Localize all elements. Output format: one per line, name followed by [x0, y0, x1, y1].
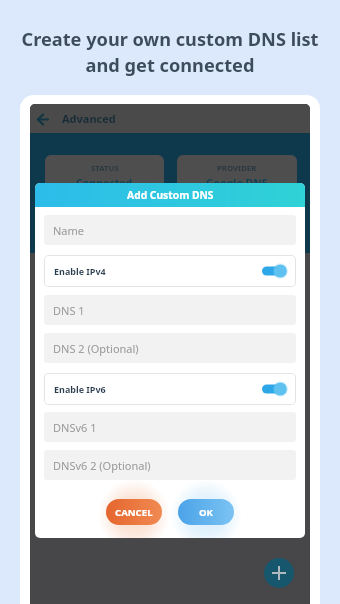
staticText: Enable IPv4 [54, 265, 106, 277]
button[interactable]: DNS 2 (Optional) [44, 333, 296, 363]
button[interactable]: OK [178, 499, 234, 525]
button[interactable]: Name [44, 215, 296, 245]
staticText: PROVIDER [217, 163, 257, 174]
staticText: CANCEL [115, 506, 153, 519]
staticText: DNSv6 2 (Optional) [53, 458, 151, 473]
button[interactable]: Back [34, 111, 50, 127]
staticText: Connected [76, 176, 133, 190]
staticText: STATUS [91, 163, 119, 174]
button[interactable]: Enable IPv6 [44, 373, 296, 405]
staticText: Name [53, 223, 85, 238]
staticText: Add Custom DNS [127, 188, 214, 202]
button[interactable]: Enable IPv4 [44, 255, 296, 287]
button[interactable]: CANCEL [106, 499, 162, 525]
staticText: OK [199, 506, 213, 519]
staticText: Enable IPv6 [54, 383, 106, 395]
button[interactable]: DNSv6 1 [44, 412, 296, 442]
staticText: Advanced [62, 111, 116, 126]
button[interactable]: Add DNS [264, 558, 294, 588]
button[interactable]: DNS 1 [44, 295, 296, 325]
staticText: Google DNS [206, 176, 268, 190]
button[interactable]: DNSv6 2 (Optional) [44, 450, 296, 480]
staticText: DNS 1 [53, 303, 85, 318]
staticText: Create your own custom DNS list and get … [21, 27, 319, 78]
staticText: DNS 2 (Optional) [53, 341, 139, 356]
staticText: DNSv6 1 [53, 420, 97, 435]
